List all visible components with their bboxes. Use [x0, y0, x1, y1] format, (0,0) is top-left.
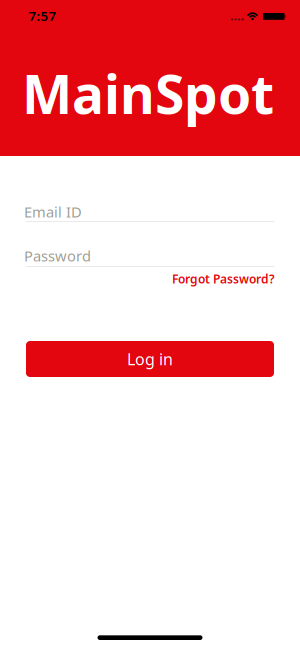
button[interactable]: Log in: [26, 341, 274, 377]
staticText: Log in: [127, 348, 173, 370]
staticText: 7:57: [28, 7, 56, 25]
staticText: Forgot Password?: [172, 271, 275, 287]
secureTextField[interactable]: Password: [24, 246, 272, 265]
button[interactable]: Forgot Password?: [172, 271, 275, 287]
staticText: Password: [24, 246, 91, 265]
staticText: Email ID: [24, 202, 82, 221]
textField[interactable]: Email ID: [24, 202, 272, 221]
staticText: MainSpot: [22, 58, 274, 129]
